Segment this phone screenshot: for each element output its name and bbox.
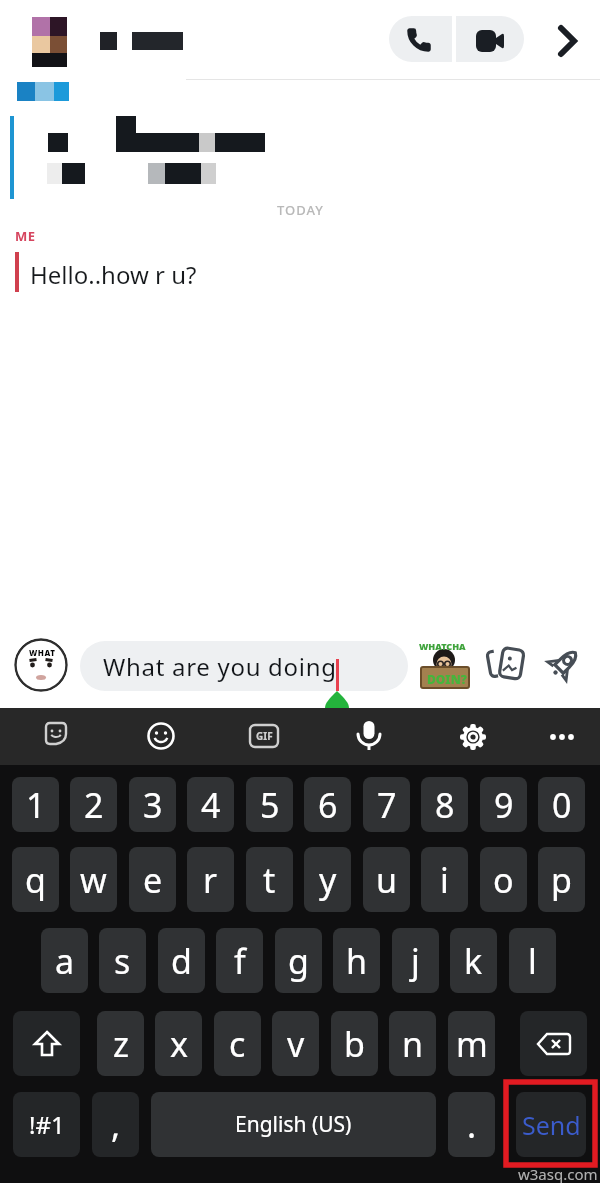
button[interactable]: w	[70, 847, 117, 912]
button[interactable]: t	[246, 847, 293, 912]
button[interactable]	[520, 1011, 587, 1076]
button[interactable]: 0	[538, 777, 585, 832]
staticText: o	[493, 857, 514, 903]
button[interactable]: ,	[92, 1092, 139, 1157]
button[interactable]: u	[363, 847, 410, 912]
staticText: GIF	[256, 729, 273, 743]
button[interactable]	[354, 720, 384, 754]
button[interactable]: q	[12, 847, 59, 912]
button[interactable]: l	[509, 928, 556, 993]
button[interactable]	[547, 647, 581, 681]
staticText: h	[346, 938, 368, 984]
button[interactable]: GIF	[248, 722, 280, 750]
staticText: y	[319, 857, 337, 903]
staticText: !#1	[29, 1108, 65, 1141]
button[interactable]: 3	[129, 777, 176, 832]
button[interactable]: z	[97, 1011, 144, 1076]
button[interactable]: g	[275, 928, 322, 993]
button[interactable]: e	[129, 847, 176, 912]
button[interactable]: WHATCHA	[416, 638, 472, 690]
button[interactable]	[456, 16, 524, 62]
button[interactable]	[389, 16, 452, 62]
button[interactable]: f	[216, 928, 263, 993]
button[interactable]: 1	[12, 777, 59, 832]
button[interactable]	[42, 720, 72, 750]
button[interactable]: y	[304, 847, 351, 912]
button[interactable]	[486, 646, 526, 682]
staticText: w	[80, 857, 107, 903]
staticText: m	[456, 1021, 488, 1067]
staticText: English (US)	[235, 1110, 352, 1139]
staticText: r	[203, 857, 218, 903]
staticText: 3	[143, 782, 163, 828]
staticText: 9	[494, 782, 514, 828]
button[interactable]: WHAT	[14, 638, 68, 692]
button[interactable]: d	[158, 928, 205, 993]
staticText: 7	[377, 782, 397, 828]
staticText: u	[376, 857, 398, 903]
button[interactable]: 5	[246, 777, 293, 832]
button[interactable]: a	[41, 928, 88, 993]
staticText: 6	[318, 782, 338, 828]
staticText: 2	[84, 782, 104, 828]
staticText: g	[288, 938, 309, 984]
staticText: w3asq.com	[518, 1164, 598, 1183]
staticText: 4	[201, 782, 221, 828]
button[interactable]	[146, 723, 176, 753]
button[interactable]	[556, 26, 580, 56]
staticText: 5	[260, 782, 280, 828]
button[interactable]: o	[480, 847, 527, 912]
staticText: WHAT	[29, 647, 56, 658]
button[interactable]: !#1	[13, 1092, 80, 1157]
staticText: 0	[552, 782, 572, 828]
button[interactable]: Send	[516, 1092, 586, 1157]
button[interactable]: j	[392, 928, 439, 993]
staticText: s	[114, 938, 131, 984]
staticText: WHATCHA	[419, 640, 466, 652]
button[interactable]: 7	[363, 777, 410, 832]
staticText: ME	[15, 227, 36, 245]
staticText: k	[464, 938, 483, 984]
button[interactable]: x	[155, 1011, 202, 1076]
staticText: Hello..how r u?	[30, 258, 197, 291]
button[interactable]: m	[448, 1011, 495, 1076]
button[interactable]: c	[214, 1011, 261, 1076]
staticText: 1	[26, 782, 46, 828]
staticText: Send	[522, 1108, 581, 1142]
button[interactable]: .	[448, 1092, 495, 1157]
button[interactable]: 6	[304, 777, 351, 832]
button[interactable]: 8	[421, 777, 468, 832]
button[interactable]: 4	[187, 777, 234, 832]
staticText: c	[229, 1021, 246, 1067]
staticText: p	[551, 857, 572, 903]
button[interactable]: r	[187, 847, 234, 912]
staticText: l	[528, 938, 537, 984]
button[interactable]	[548, 729, 576, 745]
staticText: v	[287, 1021, 305, 1067]
button[interactable]: v	[272, 1011, 319, 1076]
staticText: b	[344, 1021, 365, 1067]
button[interactable]: i	[421, 847, 468, 912]
button[interactable]: 9	[480, 777, 527, 832]
staticText: t	[263, 857, 276, 903]
staticText: What are you doing	[103, 650, 337, 683]
button[interactable]: What are you doing	[80, 641, 408, 691]
staticText: 8	[435, 782, 455, 828]
staticText: e	[143, 857, 163, 903]
staticText: DOIN?	[427, 671, 467, 687]
button[interactable]: k	[450, 928, 497, 993]
staticText: a	[55, 938, 75, 984]
button[interactable]	[459, 724, 487, 752]
button[interactable]: s	[99, 928, 146, 993]
button[interactable]: b	[331, 1011, 378, 1076]
staticText: f	[234, 938, 246, 984]
button[interactable]: n	[389, 1011, 436, 1076]
button[interactable]: h	[333, 928, 380, 993]
button[interactable]: English (US)	[151, 1092, 436, 1157]
staticText: .	[467, 1102, 477, 1148]
staticText: ,	[111, 1102, 121, 1148]
button[interactable]: p	[538, 847, 585, 912]
staticText: j	[411, 938, 420, 984]
button[interactable]: 2	[70, 777, 117, 832]
button[interactable]	[13, 1011, 80, 1076]
